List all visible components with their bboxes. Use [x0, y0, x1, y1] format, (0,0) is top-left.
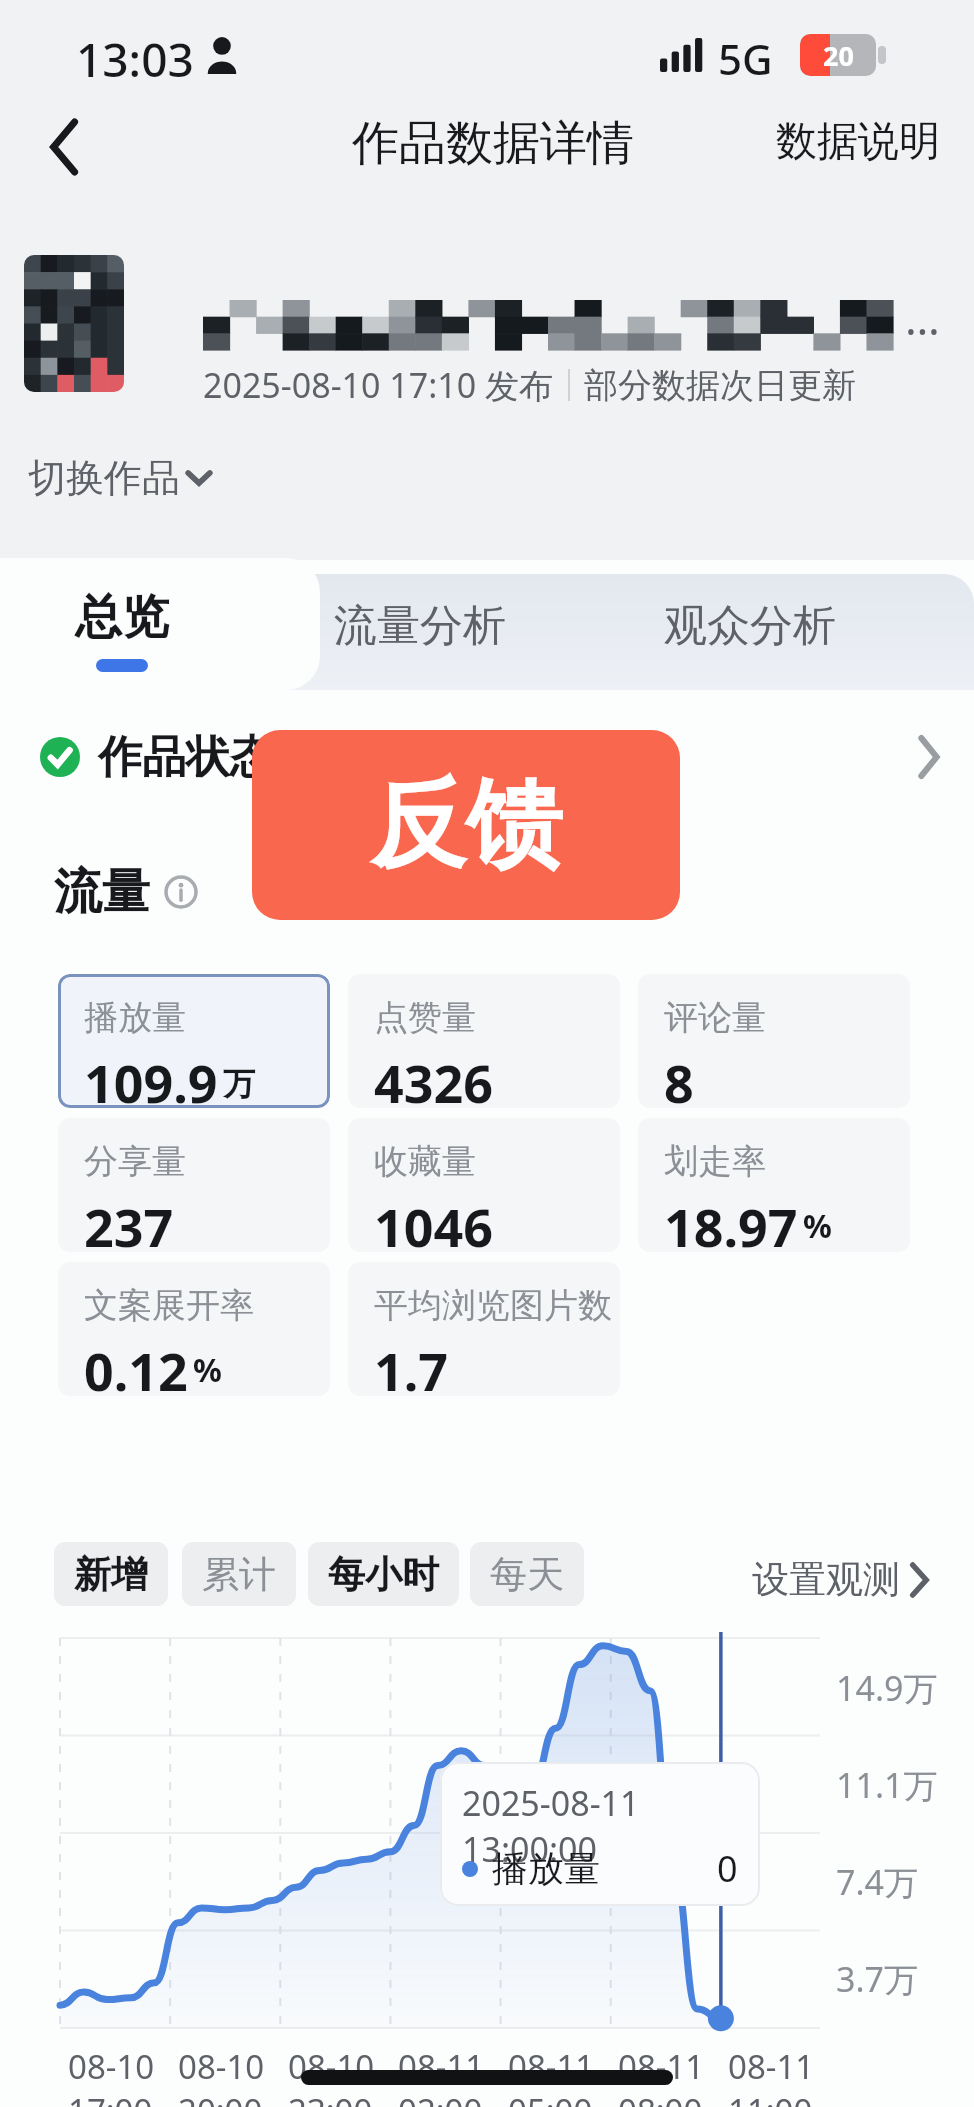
staticText: 总览	[75, 588, 169, 647]
staticText: 部分数据次日更新	[584, 364, 856, 407]
staticText: 每天	[490, 1551, 564, 1598]
staticText: 流量	[54, 862, 150, 922]
staticText: 切换作品	[28, 454, 180, 502]
staticText: 收藏量	[374, 1140, 476, 1183]
button[interactable]: 设置观测	[748, 1550, 932, 1609]
staticText: 作品数据详情	[352, 114, 634, 173]
staticText: %	[193, 1348, 222, 1392]
button[interactable]: 分享量	[58, 1118, 330, 1252]
button[interactable]: 收藏量	[348, 1118, 620, 1252]
button[interactable]: 每小时	[308, 1542, 459, 1606]
button[interactable]: 平均浏览图片数	[348, 1262, 620, 1396]
staticText: 08-11	[398, 2044, 485, 2089]
button[interactable]: 说明	[164, 875, 198, 909]
staticText: 7.4万	[836, 1859, 919, 1905]
staticText: 13:03	[76, 28, 194, 91]
staticText: 平均浏览图片数	[374, 1284, 612, 1327]
button[interactable]: 反馈	[252, 730, 680, 920]
staticText: 1046	[374, 1191, 493, 1252]
staticText: 05:00	[508, 2088, 593, 2107]
button[interactable]: 累计	[182, 1542, 296, 1606]
staticText: 14.9万	[836, 1665, 938, 1711]
staticText: …	[905, 288, 940, 348]
staticText: 3.7万	[836, 1956, 919, 2002]
staticText: 11.1万	[836, 1762, 938, 1808]
button[interactable]: 每天	[470, 1542, 584, 1606]
button[interactable]: Back	[22, 104, 108, 190]
staticText: 0	[717, 1844, 738, 1893]
staticText: 2025-08-11 13:00:00	[462, 1780, 760, 1872]
button[interactable]: 作品状态正常	[0, 714, 974, 800]
staticText: 观众分析	[664, 599, 836, 653]
staticText: 17:00	[68, 2088, 153, 2107]
button[interactable]: 划走率	[638, 1118, 910, 1252]
staticText: 08-10	[178, 2044, 265, 2089]
staticText: 播放量	[84, 996, 186, 1039]
staticText: 数据说明	[776, 116, 940, 168]
staticText: 237	[84, 1191, 174, 1252]
staticText: 20	[823, 37, 854, 74]
staticText: 02:00	[398, 2088, 483, 2107]
staticText: 08:00	[618, 2088, 703, 2107]
button[interactable]: 新增	[54, 1542, 168, 1606]
staticText: 文案展开率	[84, 1284, 254, 1327]
staticText: 08-11	[728, 2044, 815, 2089]
button[interactable]: 文案展开率	[58, 1262, 330, 1396]
staticText: 分享量	[84, 1140, 186, 1183]
staticText: 1.7	[374, 1335, 449, 1396]
staticText: 08-11	[508, 2044, 595, 2089]
staticText: 评论量	[664, 996, 766, 1039]
staticText: 08-11	[618, 2044, 705, 2089]
staticText: 每小时	[328, 1551, 439, 1598]
staticText: 2025-08-10 17:10 发布	[203, 362, 554, 408]
staticText: %	[803, 1204, 832, 1248]
staticText: 作品状态正常	[98, 730, 362, 785]
staticText: 23:00	[288, 2088, 373, 2107]
button[interactable]: 总览	[0, 558, 320, 690]
staticText: 20:00	[178, 2088, 263, 2107]
button[interactable]: 数据说明	[770, 108, 946, 176]
staticText: 4326	[374, 1047, 493, 1108]
button[interactable]: 播放量	[58, 974, 330, 1108]
button[interactable]: 切换作品	[24, 446, 216, 510]
staticText: 反馈	[370, 765, 562, 886]
button[interactable]: 流量分析	[300, 574, 540, 690]
staticText: 累计	[202, 1551, 276, 1598]
staticText: 万	[223, 1064, 255, 1104]
staticText: 流量分析	[334, 599, 506, 653]
staticText: 5G	[718, 30, 773, 87]
button[interactable]: 点赞量	[348, 974, 620, 1108]
staticText: 点赞量	[374, 996, 476, 1039]
staticText: 109.9	[84, 1047, 218, 1108]
staticText: 08-10	[68, 2044, 155, 2089]
staticText: 播放量	[492, 1846, 600, 1891]
staticText: 08-10	[288, 2044, 375, 2089]
staticText: 18.97	[664, 1191, 798, 1252]
button[interactable]: 评论量	[638, 974, 910, 1108]
staticText: 0.12	[84, 1335, 188, 1396]
staticText: 新增	[74, 1551, 148, 1598]
staticText: 8	[664, 1047, 694, 1108]
staticText: 设置观测	[752, 1556, 900, 1603]
staticText: 11:00	[728, 2088, 813, 2107]
staticText: 划走率	[664, 1140, 766, 1183]
button[interactable]: 观众分析	[600, 574, 900, 690]
